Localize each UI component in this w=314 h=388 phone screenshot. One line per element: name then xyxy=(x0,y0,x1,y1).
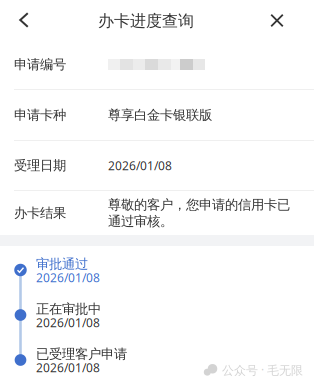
staticText: 办卡结果 xyxy=(14,205,66,221)
staticText: 申请编号 xyxy=(14,56,66,73)
staticText: 办卡进度查询 xyxy=(98,11,194,31)
staticText: 公众号 · 毛无限 xyxy=(222,362,303,378)
staticText: 受理日期 xyxy=(14,157,66,174)
staticText: 尊享白金卡银联版 xyxy=(108,107,212,123)
staticText: 尊敬的客户，您申请的信用卡已通过审核。 xyxy=(108,197,290,229)
staticText: 2026/01/08 xyxy=(36,314,100,330)
staticText: 2026/01/08 xyxy=(36,359,100,375)
staticText: 2026/01/08 xyxy=(108,157,172,173)
staticText: 申请卡种 xyxy=(14,107,66,123)
button[interactable]: Back xyxy=(0,0,48,39)
staticText: 正在审批中 xyxy=(36,301,101,317)
staticText: 审批通过 xyxy=(36,256,88,272)
staticText: 2026/01/08 xyxy=(36,269,100,285)
button[interactable]: Close xyxy=(255,0,299,39)
staticText: 已受理客户申请 xyxy=(36,346,127,362)
